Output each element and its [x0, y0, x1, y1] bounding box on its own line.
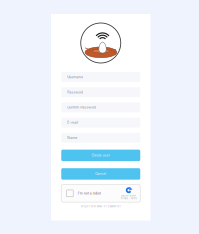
staticText: I'm not a robot	[78, 191, 101, 195]
button[interactable]: Name	[61, 133, 140, 143]
button[interactable]: E-mail	[61, 118, 140, 128]
staticText: Confirm Password	[67, 105, 96, 109]
staticText: Password	[67, 90, 83, 94]
button[interactable]: Password	[61, 87, 140, 97]
staticText: Name	[67, 136, 77, 140]
staticText: E-mail	[67, 121, 78, 125]
staticText: Privacy - Terms	[121, 197, 137, 200]
staticText: reCAPTCHA	[121, 194, 136, 197]
button[interactable]: Create user	[61, 150, 140, 161]
staticText: Cancel	[95, 172, 106, 176]
button[interactable]: I'm not a robot checkbox	[66, 190, 73, 197]
staticText: Create user	[92, 153, 110, 157]
button[interactable]: Forgot your email or password?	[81, 205, 121, 208]
staticText: Username	[67, 75, 83, 79]
button[interactable]: Confirm Password	[61, 102, 140, 112]
button[interactable]: Cancel	[61, 168, 140, 180]
button[interactable]: Username	[61, 72, 140, 82]
staticText: Forgot your email or password?	[81, 205, 121, 208]
